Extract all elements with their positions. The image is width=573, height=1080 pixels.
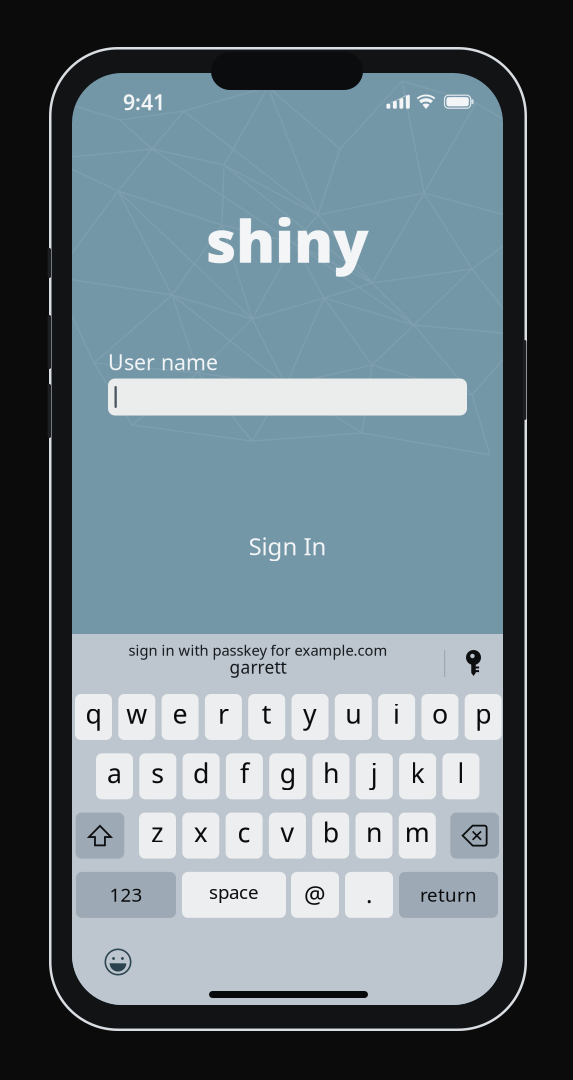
button[interactable]: t — [248, 694, 285, 740]
button[interactable]: space — [182, 872, 286, 918]
staticText: 123 — [109, 882, 142, 907]
staticText: sign in with passkey for example.com — [128, 640, 387, 660]
button[interactable]: x — [182, 813, 219, 859]
staticText: t — [262, 696, 272, 731]
staticText: p — [475, 696, 491, 731]
staticText: space — [209, 879, 259, 904]
staticText: h — [323, 755, 339, 790]
button[interactable]: v — [269, 813, 306, 859]
staticText: j — [371, 755, 378, 790]
staticText: u — [345, 696, 361, 731]
staticText: n — [366, 814, 382, 850]
button[interactable]: r — [205, 694, 242, 740]
staticText: w — [126, 696, 147, 731]
staticText: a — [107, 755, 122, 790]
button[interactable]: c — [226, 813, 263, 859]
button[interactable]: f — [226, 753, 263, 799]
button[interactable]: a — [96, 753, 133, 799]
staticText: d — [193, 755, 209, 790]
staticText: b — [323, 814, 339, 850]
button[interactable]: return — [399, 872, 498, 918]
button[interactable]: q — [75, 694, 112, 740]
button[interactable]: l — [442, 753, 479, 799]
button[interactable]: m — [399, 813, 436, 859]
staticText: e — [173, 696, 188, 731]
button[interactable]: p — [465, 694, 502, 740]
button[interactable]: 123 — [76, 872, 176, 918]
staticText: x — [194, 814, 208, 850]
staticText: Sign In — [248, 530, 326, 562]
staticText: shiny — [206, 201, 369, 279]
staticText: v — [280, 814, 294, 850]
button[interactable]: Sign In — [72, 526, 503, 566]
button[interactable]: @ — [291, 872, 339, 918]
staticText: i — [393, 696, 400, 731]
button[interactable]: i — [378, 694, 415, 740]
staticText: c — [238, 814, 251, 850]
button[interactable]: . — [345, 872, 393, 918]
button[interactable]: e — [162, 694, 199, 740]
staticText: y — [303, 696, 317, 731]
staticText: f — [240, 755, 249, 790]
staticText: . — [366, 878, 372, 910]
button[interactable]: n — [355, 813, 392, 859]
staticText: k — [411, 755, 425, 790]
staticText: o — [432, 696, 448, 731]
button[interactable]: Delete — [450, 813, 499, 859]
staticText: z — [151, 814, 164, 850]
staticText: s — [151, 755, 164, 790]
button[interactable]: w — [118, 694, 155, 740]
staticText: @ — [304, 878, 326, 910]
button[interactable]: Use passkey — [453, 643, 493, 683]
button[interactable]: Emoji keyboard — [96, 940, 140, 984]
button[interactable]: b — [312, 813, 349, 859]
staticText: return — [420, 882, 477, 907]
staticText: m — [405, 814, 430, 850]
button[interactable]: sign in with passkey for example.com — [108, 640, 408, 678]
button[interactable]: h — [312, 753, 349, 799]
staticText: garrett — [229, 655, 286, 678]
button[interactable]: j — [356, 753, 393, 799]
staticText: r — [218, 696, 229, 731]
button[interactable]: s — [139, 753, 176, 799]
staticText: 9:41 — [123, 88, 165, 116]
staticText: q — [85, 696, 101, 731]
button[interactable]: o — [421, 694, 458, 740]
staticText: User name — [108, 348, 218, 376]
button[interactable]: Shift — [76, 813, 124, 859]
button[interactable]: z — [139, 813, 176, 859]
button[interactable]: g — [269, 753, 306, 799]
staticText: g — [280, 755, 296, 790]
button[interactable]: k — [399, 753, 436, 799]
button[interactable]: d — [183, 753, 220, 799]
button[interactable]: u — [335, 694, 372, 740]
staticText: l — [457, 755, 464, 790]
button[interactable]: y — [291, 694, 328, 740]
